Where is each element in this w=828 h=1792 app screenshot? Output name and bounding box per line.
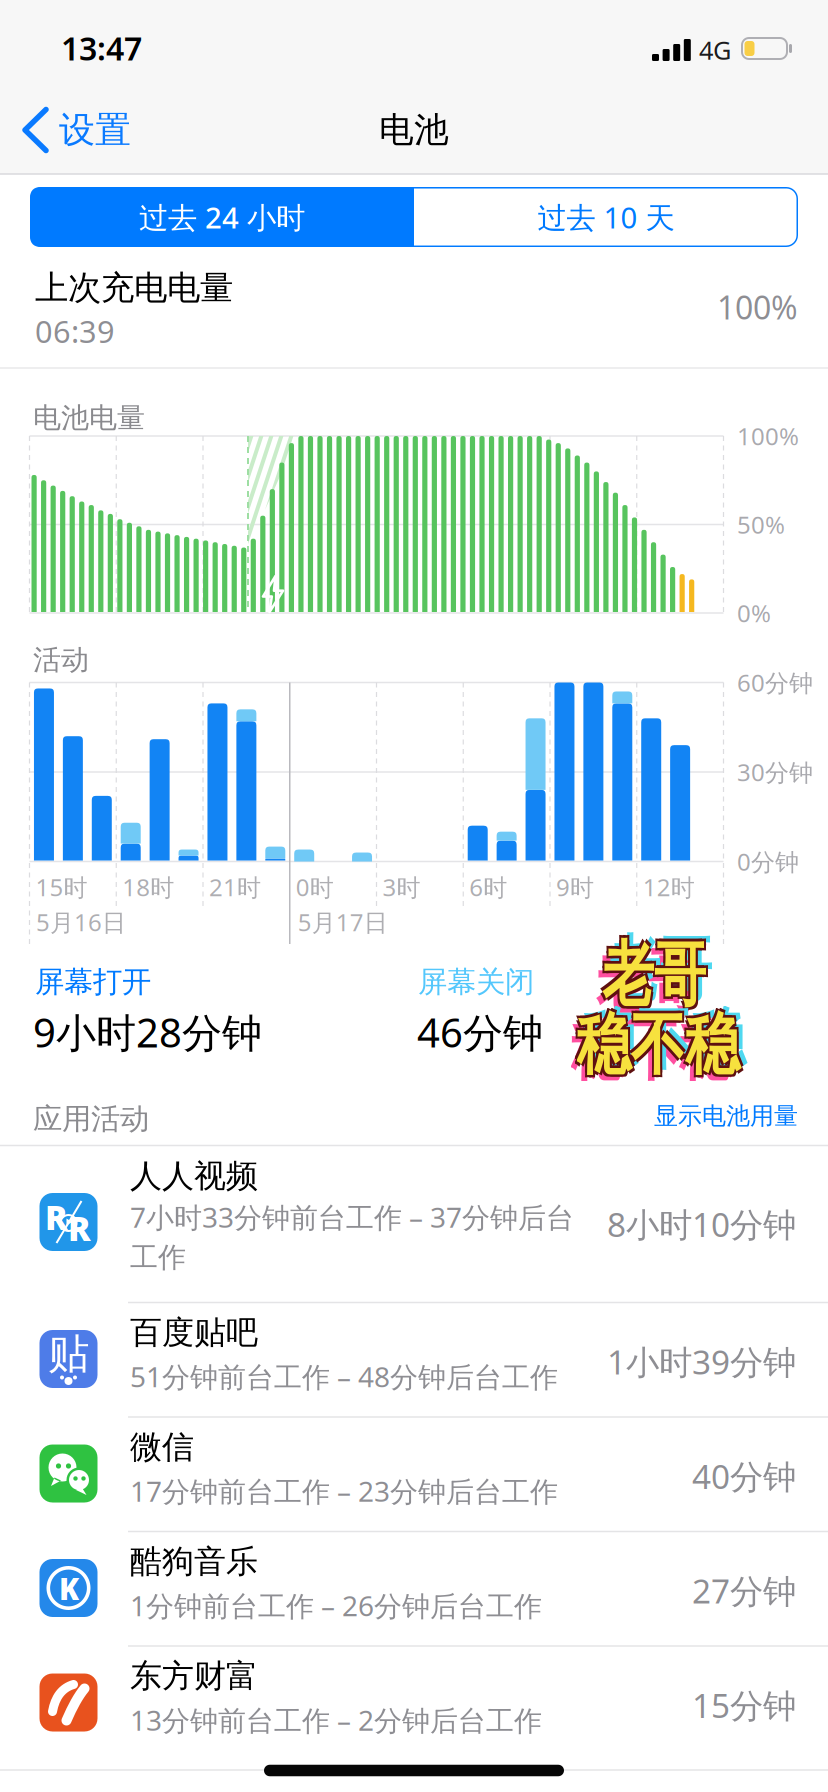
staticText: 51分钟前台工作 – 48分钟后台工作 <box>130 1358 558 1395</box>
staticText: 50% <box>737 509 785 540</box>
staticText: 30分钟 <box>737 756 813 788</box>
staticText: 老哥 <box>604 945 708 1009</box>
button[interactable]: 微信 <box>0 1417 828 1531</box>
staticText: 0% <box>737 597 771 629</box>
staticText: 工作 <box>130 1240 186 1275</box>
staticText: 老哥 <box>600 941 704 1005</box>
staticText: 老哥 <box>596 948 700 1012</box>
button[interactable]: 过去 10 天 <box>414 187 798 247</box>
staticText: 屏幕关闭 <box>418 964 534 1000</box>
staticText: 100% <box>737 420 799 452</box>
button[interactable]: R <box>0 1145 828 1302</box>
staticText: 老哥 <box>602 943 706 1007</box>
button[interactable]: 东方财富 <box>0 1646 828 1760</box>
button[interactable]: K <box>0 1531 828 1646</box>
staticText: 贴 <box>48 1329 89 1379</box>
staticText: 21时 <box>209 871 261 903</box>
staticText: 1小时39分钟 <box>607 1339 796 1384</box>
staticText: 4G <box>699 33 731 67</box>
staticText: 60分钟 <box>737 667 813 698</box>
staticText: 15时 <box>35 871 87 903</box>
staticText: 18时 <box>122 871 174 903</box>
staticText: 5月17日 <box>298 906 388 938</box>
staticText: 27分钟 <box>692 1568 796 1613</box>
staticText: 显示电池用量 <box>654 1101 798 1131</box>
staticText: 人人视频 <box>130 1156 258 1196</box>
staticText: 5月16日 <box>36 906 126 938</box>
staticText: 稳不稳 <box>574 1011 742 1079</box>
staticText: 上次充电电量 <box>35 267 233 308</box>
staticText: 百度贴吧 <box>130 1313 258 1352</box>
staticText: 活动 <box>33 643 89 677</box>
staticText: 8小时10分钟 <box>607 1202 796 1246</box>
button[interactable]: 贴 <box>0 1302 828 1417</box>
button[interactable]: 过去 24 小时 <box>30 187 414 247</box>
staticText: 应用活动 <box>33 1101 149 1137</box>
staticText: 0分钟 <box>737 846 799 877</box>
staticText: 9小时28分钟 <box>33 1005 262 1058</box>
staticText: 3时 <box>382 871 420 903</box>
staticText: 17分钟前台工作 – 23分钟后台工作 <box>130 1472 558 1510</box>
button[interactable]: 返回设置 <box>25 108 131 152</box>
staticText: 100% <box>717 286 798 328</box>
staticText: R <box>45 1195 68 1239</box>
staticText: 东方财富 <box>130 1656 258 1696</box>
staticText: 9时 <box>556 871 594 903</box>
staticText: K <box>59 1569 79 1608</box>
staticText: 15分钟 <box>692 1683 796 1727</box>
staticText: 06:39 <box>35 311 115 351</box>
staticText: 电池电量 <box>33 401 145 435</box>
staticText: 过去 24 小时 <box>139 197 305 236</box>
staticText: 老哥 <box>604 941 708 1005</box>
button[interactable]: 显示电池用量 <box>0 0 828 1792</box>
staticText: 稳不稳 <box>576 1009 744 1077</box>
staticText: 稳不稳 <box>572 1009 740 1077</box>
staticText: 过去 10 天 <box>537 197 674 236</box>
staticText: 老哥 <box>600 945 704 1009</box>
staticText: 稳不稳 <box>572 1013 740 1081</box>
staticText: 13:47 <box>61 27 142 69</box>
staticText: 电池 <box>379 109 449 151</box>
staticText: 微信 <box>130 1427 194 1467</box>
staticText: 6时 <box>469 871 507 903</box>
staticText: 1分钟前台工作 – 26分钟后台工作 <box>130 1587 542 1624</box>
staticText: 13分钟前台工作 – 2分钟后台工作 <box>130 1701 542 1739</box>
staticText: 稳不稳 <box>568 1016 736 1084</box>
staticText: 12时 <box>643 871 695 903</box>
staticText: 稳不稳 <box>580 1007 748 1075</box>
staticText: 老哥 <box>608 939 712 1003</box>
staticText: 46分钟 <box>417 1005 543 1058</box>
staticText: 酷狗音乐 <box>130 1542 258 1581</box>
staticText: 0时 <box>296 871 334 903</box>
staticText: 稳不稳 <box>576 1013 744 1081</box>
staticText: R <box>68 1206 91 1250</box>
staticText: 设置 <box>59 108 131 152</box>
staticText: 屏幕打开 <box>35 964 151 1000</box>
staticText: 7小时33分钟前台工作 – 37分钟后台 <box>130 1198 574 1236</box>
staticText: 40分钟 <box>692 1454 796 1498</box>
